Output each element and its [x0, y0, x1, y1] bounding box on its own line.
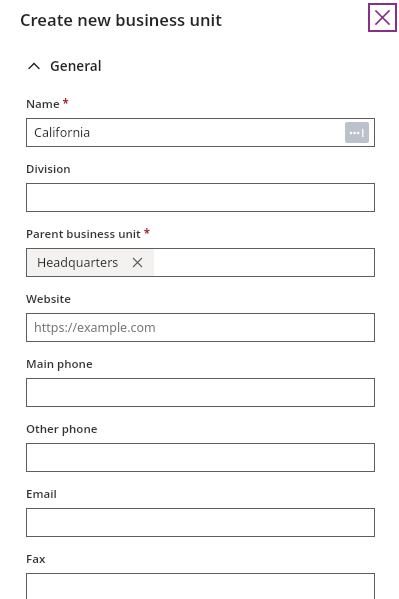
button[interactable]: https://example.com	[26, 313, 375, 342]
staticText: Headquarters	[37, 254, 119, 271]
staticText: Other phone	[26, 421, 98, 437]
staticText: California	[34, 124, 91, 141]
staticText: Main phone	[26, 356, 93, 372]
staticText: https://example.com	[34, 319, 156, 336]
staticText: Division	[26, 161, 71, 177]
button[interactable]: Close	[368, 3, 397, 32]
button[interactable]: Remove Headquarters	[131, 256, 144, 269]
button[interactable]: California	[26, 118, 375, 147]
staticText: Fax	[26, 551, 46, 567]
staticText: General	[50, 57, 102, 75]
button[interactable]: Lookup	[345, 122, 369, 143]
staticText: Website	[26, 291, 71, 307]
button[interactable]	[26, 183, 375, 212]
button[interactable]: Headquarters	[26, 248, 375, 277]
button[interactable]: General	[26, 57, 102, 75]
staticText: Email	[26, 486, 57, 502]
staticText: Create new business unit	[20, 8, 222, 30]
button[interactable]	[26, 378, 375, 407]
staticText: Name *	[26, 96, 69, 112]
button[interactable]	[26, 573, 375, 599]
button[interactable]	[26, 443, 375, 472]
button[interactable]	[26, 508, 375, 537]
staticText: Parent business unit *	[26, 226, 150, 242]
button[interactable]: Headquarters	[27, 249, 154, 276]
